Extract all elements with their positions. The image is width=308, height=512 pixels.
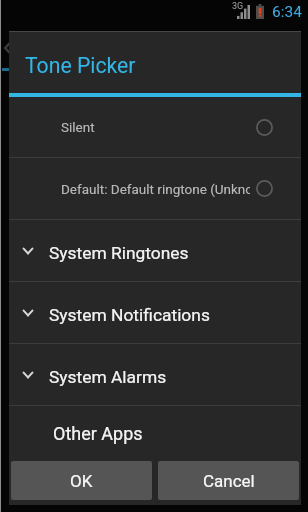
staticText: System Notifications <box>49 305 210 325</box>
staticText: 6:34 <box>272 3 302 21</box>
staticText: Cancel <box>203 471 255 491</box>
button[interactable]: Other Apps <box>9 406 301 458</box>
staticText: Silent <box>61 119 95 135</box>
staticText: 3G <box>232 1 244 12</box>
staticText: Tone Picker <box>25 53 136 78</box>
other: Battery low <box>256 4 264 19</box>
staticText: Other Apps <box>53 423 143 444</box>
staticText: System Ringtones <box>49 243 189 263</box>
button[interactable]: OK <box>11 461 152 500</box>
button[interactable]: System Ringtones <box>9 220 301 281</box>
button[interactable]: Default: Default ringtone (Unknown) <box>9 158 301 219</box>
button[interactable]: Cancel <box>158 461 299 500</box>
staticText: OK <box>70 471 93 491</box>
staticText: Default: Default ringtone (Unknown) <box>61 181 250 197</box>
button[interactable]: System Notifications <box>9 282 301 343</box>
other: Signal strength <box>237 5 250 19</box>
staticText: System Alarms <box>49 367 167 387</box>
button[interactable]: System Alarms <box>9 344 301 405</box>
button[interactable]: Silent <box>9 97 301 157</box>
